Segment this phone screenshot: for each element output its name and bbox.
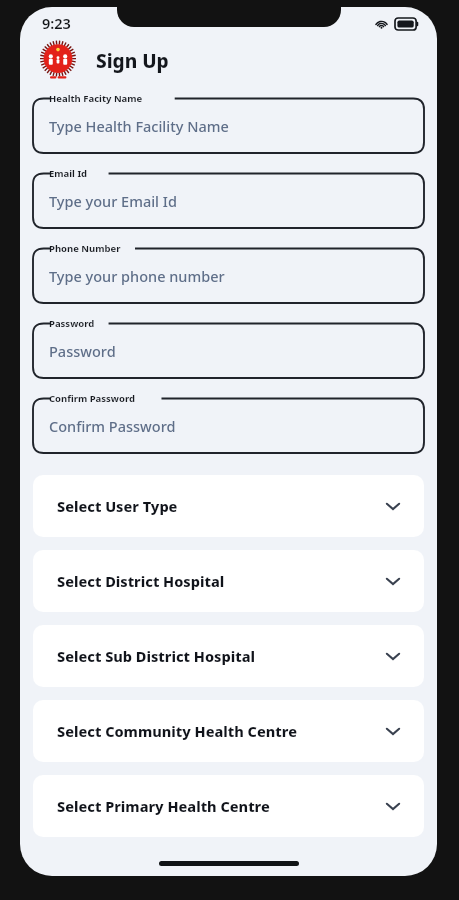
other: Expand Select User Type bbox=[382, 495, 404, 517]
staticText: Password bbox=[49, 317, 95, 330]
staticText: Phone Number bbox=[49, 242, 121, 255]
button[interactable]: Select Sub District Hospital bbox=[33, 625, 424, 687]
button[interactable]: Email Id bbox=[33, 165, 424, 228]
staticText: 9:23 bbox=[42, 13, 71, 33]
other: Expand Select District Hospital bbox=[382, 570, 404, 592]
button[interactable]: Confirm Password bbox=[33, 390, 424, 453]
button[interactable]: Select Community Health Centre bbox=[33, 700, 424, 762]
other: Expand Select Sub District Hospital bbox=[382, 645, 404, 667]
staticText: Type your phone number bbox=[49, 266, 225, 286]
button[interactable]: Phone Number bbox=[33, 240, 424, 303]
button[interactable]: Select User Type bbox=[33, 475, 424, 537]
staticText: Select Primary Health Centre bbox=[57, 796, 270, 816]
staticText: Select User Type bbox=[57, 496, 178, 516]
staticText: Sign Up bbox=[96, 48, 169, 74]
staticText: Type Health Facility Name bbox=[49, 116, 229, 136]
staticText: Password bbox=[49, 341, 116, 361]
staticText: Health Facity Name bbox=[49, 92, 143, 105]
staticText: Select Sub District Hospital bbox=[57, 646, 255, 666]
button[interactable]: Select Primary Health Centre bbox=[33, 775, 424, 837]
staticText: Confirm Password bbox=[49, 392, 135, 405]
staticText: Type your Email Id bbox=[49, 191, 177, 211]
button[interactable]: Health Facity Name bbox=[33, 90, 424, 153]
staticText: Select District Hospital bbox=[57, 571, 225, 591]
staticText: Select Community Health Centre bbox=[57, 721, 297, 741]
button[interactable]: Select District Hospital bbox=[33, 550, 424, 612]
button[interactable]: Password bbox=[33, 315, 424, 378]
other: Expand Select Community Health Centre bbox=[382, 720, 404, 742]
staticText: Email Id bbox=[49, 167, 88, 180]
staticText: Confirm Password bbox=[49, 416, 176, 436]
other: Expand Select Primary Health Centre bbox=[382, 795, 404, 817]
